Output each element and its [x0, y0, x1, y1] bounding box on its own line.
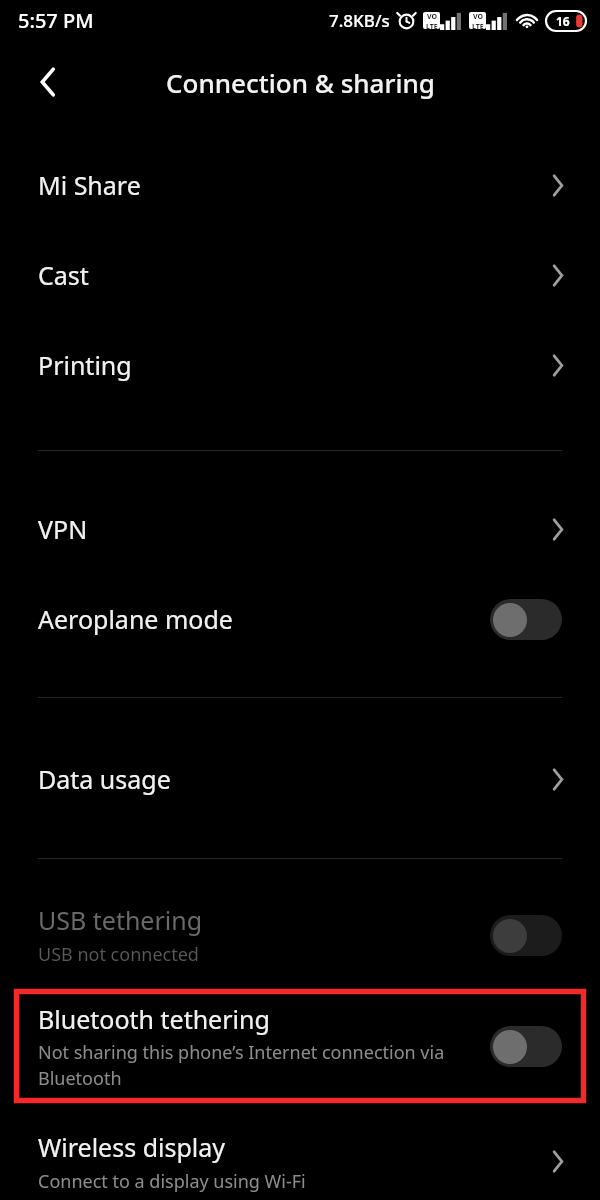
staticText: Printing: [38, 348, 132, 382]
staticText: Not sharing this phone’s Internet connec…: [38, 1040, 480, 1090]
staticText: LTE: [426, 22, 438, 29]
button[interactable]: Aeroplane mode: [0, 574, 600, 664]
staticText: Data usage: [38, 762, 171, 796]
staticText: VPN: [38, 512, 88, 546]
staticText: Aeroplane mode: [38, 602, 233, 636]
staticText: Cast: [38, 258, 89, 292]
staticText: VO: [427, 12, 438, 22]
button[interactable]: Toggle: [490, 1026, 562, 1067]
button[interactable]: Back: [20, 54, 76, 110]
staticText: Connect to a display using Wi-Fi: [38, 1169, 306, 1194]
button[interactable]: Bluetooth tethering: [14, 989, 586, 1103]
button[interactable]: Cast: [0, 230, 600, 320]
button[interactable]: Printing: [0, 320, 600, 410]
staticText: Connection & sharing: [166, 65, 435, 100]
staticText: LTE: [472, 22, 484, 29]
button[interactable]: Data usage: [0, 734, 600, 824]
button[interactable]: Toggle: [490, 915, 562, 956]
staticText: USB tethering: [38, 903, 203, 937]
button[interactable]: Mi Share: [0, 118, 600, 230]
staticText: Bluetooth tethering: [38, 1002, 270, 1036]
staticText: VO: [473, 12, 484, 22]
button[interactable]: Wireless display: [0, 1103, 600, 1200]
staticText: 5:57 PM: [18, 7, 94, 34]
button[interactable]: USB tethering: [0, 893, 600, 977]
staticText: 16: [556, 13, 570, 29]
staticText: USB not connected: [38, 942, 199, 967]
button[interactable]: Toggle: [490, 599, 562, 640]
button[interactable]: VPN: [0, 484, 600, 574]
staticText: Mi Share: [38, 168, 141, 202]
staticText: 7.8KB/s: [329, 9, 390, 32]
staticText: Wireless display: [38, 1130, 226, 1164]
